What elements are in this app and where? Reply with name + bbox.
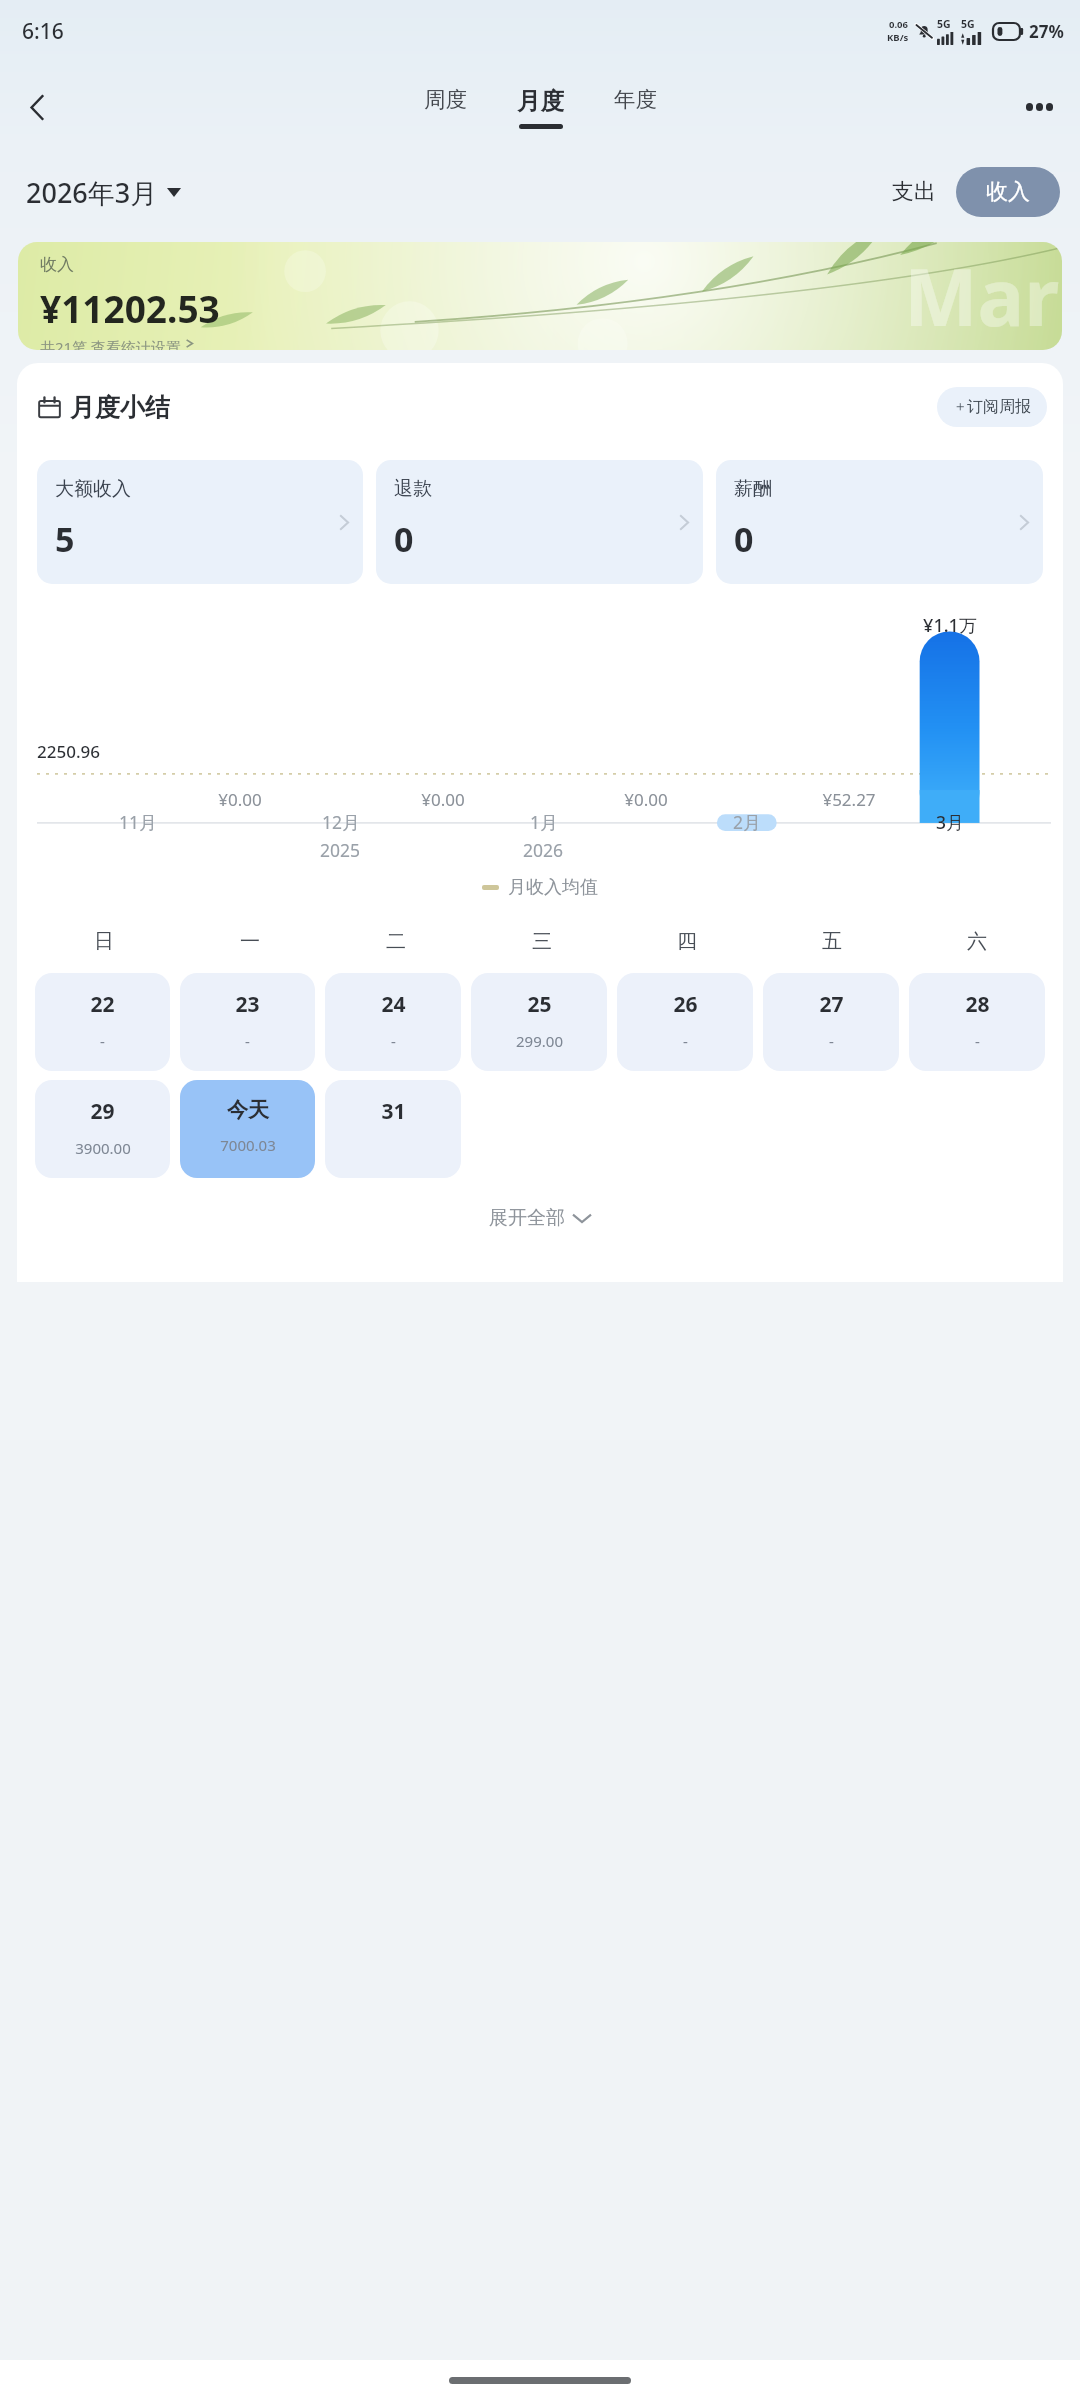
button[interactable]: 支出: [878, 169, 950, 215]
staticText: 收入: [986, 178, 1030, 206]
staticText: 五: [822, 929, 842, 954]
button[interactable]: 周度: [418, 82, 473, 130]
button[interactable]: 收入: [956, 167, 1060, 217]
staticText: 年度: [614, 86, 657, 113]
staticText: -: [683, 1031, 688, 1051]
button[interactable]: 24: [325, 973, 461, 1071]
staticText: 299.00: [516, 1031, 563, 1051]
staticText: 收入: [40, 254, 74, 275]
staticText: 3月: [936, 810, 964, 834]
staticText: 支出: [892, 178, 936, 206]
staticText: 29: [90, 1097, 115, 1126]
staticText: 27: [819, 990, 844, 1019]
button[interactable]: More options: [1010, 78, 1068, 136]
staticText: 共21笔 查看统计设置: [40, 337, 182, 350]
staticText: 26: [673, 990, 698, 1019]
staticText: 12月: [322, 810, 360, 834]
staticText: 二: [386, 929, 406, 954]
staticText: 月收入均值: [508, 876, 598, 899]
staticText: 3900.00: [75, 1138, 131, 1158]
staticText: ¥0.00: [624, 788, 668, 811]
staticText: 订阅周报: [967, 397, 1031, 417]
button[interactable]: 28: [909, 973, 1045, 1071]
staticText: 1月: [530, 810, 558, 834]
button[interactable]: 共21笔 查看统计设置: [40, 337, 194, 350]
staticText: 2026年3月: [26, 174, 158, 211]
staticText: -: [829, 1031, 834, 1051]
staticText: 三: [532, 929, 552, 954]
staticText: 0: [734, 516, 754, 562]
button[interactable]: Back: [8, 78, 66, 136]
staticText: 大额收入: [55, 477, 131, 501]
staticText: 一: [240, 929, 260, 954]
button[interactable]: 2026年3月: [26, 168, 181, 217]
button[interactable]: Mar: [18, 242, 1062, 350]
staticText: 月度小结: [70, 392, 170, 423]
staticText: 日: [94, 929, 114, 954]
staticText: 5G: [937, 17, 951, 31]
staticText: 2026: [523, 838, 564, 862]
button[interactable]: 年度: [608, 82, 663, 130]
staticText: 5: [55, 516, 75, 562]
button[interactable]: 退款: [376, 460, 703, 584]
staticText: 2250.96: [37, 740, 100, 763]
button[interactable]: 大额收入: [37, 460, 363, 584]
staticText: 展开全部: [489, 1206, 565, 1230]
button[interactable]: 月度: [511, 82, 570, 133]
staticText: 27%: [1029, 20, 1064, 43]
staticText: 7000.03: [220, 1135, 276, 1155]
staticText: -: [245, 1031, 250, 1051]
staticText: 28: [965, 990, 990, 1019]
staticText: -: [391, 1031, 396, 1051]
staticText: 25: [527, 990, 552, 1019]
staticText: ¥11202.53: [40, 283, 220, 333]
staticText: 2025: [320, 838, 361, 862]
staticText: ¥0.00: [218, 788, 262, 811]
staticText: -: [100, 1031, 105, 1051]
button[interactable]: 27: [763, 973, 899, 1071]
staticText: -: [975, 1031, 980, 1051]
staticText: ＋: [953, 398, 967, 416]
staticText: 周度: [424, 86, 467, 113]
staticText: 11月: [119, 810, 157, 834]
button[interactable]: 23: [180, 973, 315, 1071]
staticText: 5G: [961, 17, 975, 31]
staticText: ¥1.1万: [923, 613, 977, 638]
staticText: 今天: [227, 1097, 269, 1123]
button[interactable]: 薪酬: [716, 460, 1043, 584]
staticText: ¥0.00: [421, 788, 465, 811]
button[interactable]: 26: [617, 973, 753, 1071]
staticText: 薪酬: [734, 477, 772, 501]
staticText: 31: [381, 1097, 406, 1126]
staticText: 0: [394, 516, 414, 562]
staticText: 0.06: [889, 18, 908, 31]
button[interactable]: 22: [35, 973, 170, 1071]
staticText: 2月: [733, 810, 761, 834]
button[interactable]: 展开全部: [17, 1200, 1063, 1236]
staticText: 月度: [517, 86, 564, 116]
staticText: 6:16: [22, 17, 64, 46]
staticText: ¥52.27: [822, 788, 876, 811]
staticText: 23: [235, 990, 260, 1019]
button[interactable]: 31: [325, 1080, 461, 1178]
button[interactable]: 25: [471, 973, 607, 1071]
button[interactable]: 今天: [180, 1080, 315, 1178]
button[interactable]: 29: [35, 1080, 170, 1178]
staticText: Mar: [904, 243, 1060, 349]
staticText: 24: [381, 990, 406, 1019]
staticText: 22: [90, 990, 115, 1019]
staticText: 六: [967, 929, 987, 954]
staticText: 退款: [394, 477, 432, 501]
staticText: 四: [677, 929, 697, 954]
staticText: KB/s: [887, 31, 909, 44]
button[interactable]: ＋: [937, 387, 1047, 427]
